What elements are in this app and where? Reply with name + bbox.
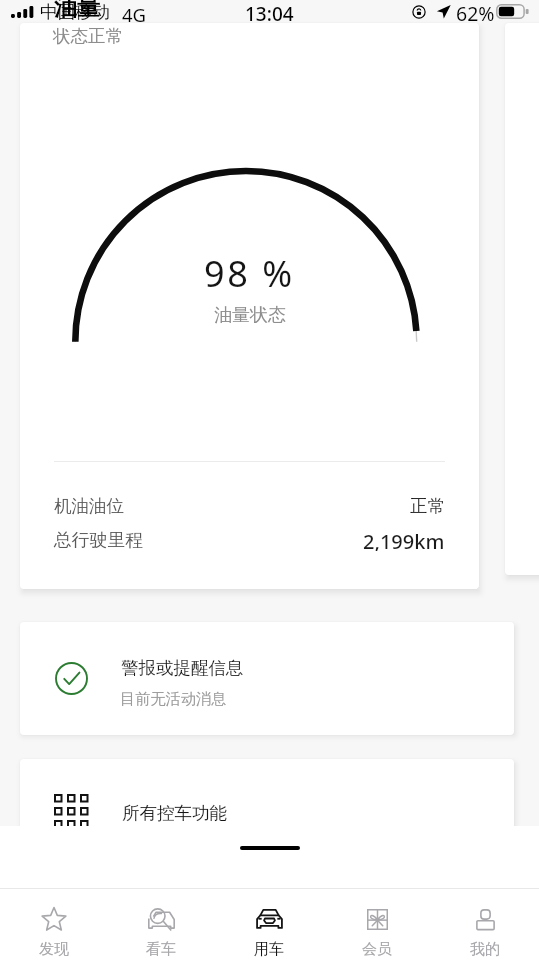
button[interactable]: 所有控车功能 [20,759,514,872]
staticText: 会员 [362,940,392,959]
staticText: 机油油位 [54,495,124,517]
staticText: 油量 [54,0,100,22]
staticText: 13:04 [245,1,294,27]
staticText: 4G [122,2,147,27]
button[interactable]: 我的 [431,889,539,960]
other: 发现 [42,907,66,931]
staticText: 2,199km [363,528,445,551]
staticText: 用车 [254,940,284,959]
staticText: 所有控车功能 [122,802,227,824]
staticText: 62% [456,0,495,27]
staticText: 正常 [410,495,445,517]
staticText: 目前无活动消息 [120,689,227,708]
staticText: 我的 [470,940,500,959]
staticText: 98 % [204,249,295,298]
staticText: 警报或提醒信息 [121,657,244,679]
other: 会员 [367,909,388,930]
staticText: 总行驶里程 [54,529,143,551]
button[interactable]: 98 % [20,23,479,589]
other: 我的 [475,909,496,930]
staticText: 发现 [39,940,69,959]
staticText: 状态正常 [53,25,123,47]
staticText: 油量状态 [214,304,286,327]
button[interactable]: 看车 [107,889,215,960]
button[interactable]: 用车 [215,889,323,960]
button[interactable]: 会员 [323,889,431,960]
button[interactable]: 发现 [0,889,107,960]
staticText: 看车 [146,940,176,959]
staticText: 中国移动 [40,1,110,23]
button[interactable]: 警报或提醒信息 [20,622,514,735]
other: 看车 [148,907,175,931]
other: 用车 [256,907,283,931]
